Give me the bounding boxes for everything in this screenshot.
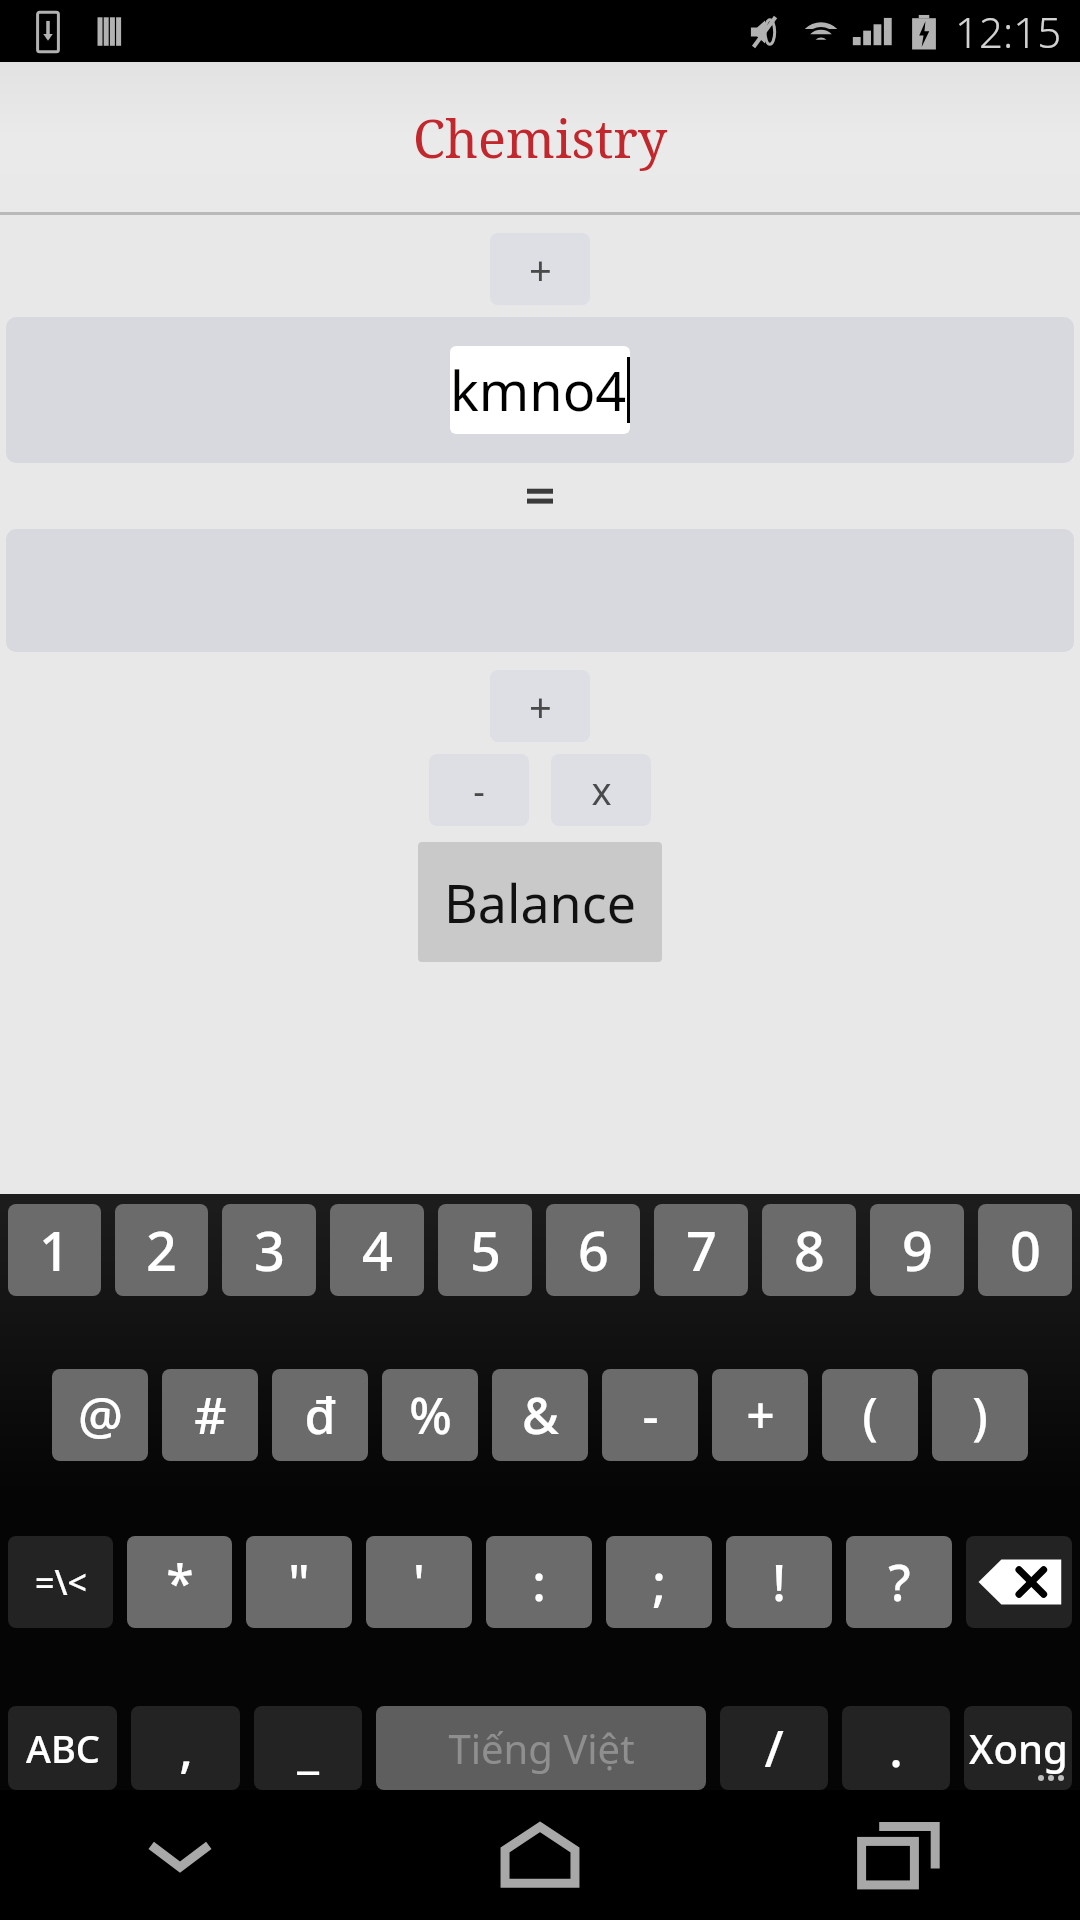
staticText: 12:15 (955, 3, 1062, 60)
button[interactable]: : (486, 1536, 592, 1628)
staticText: Chemistry (413, 102, 668, 173)
button[interactable]: 6 (546, 1204, 640, 1296)
button[interactable]: # (162, 1369, 258, 1461)
button[interactable]: " (246, 1536, 352, 1628)
staticText: 2 (146, 1213, 177, 1287)
staticText: kmno4 (450, 353, 627, 427)
staticText: @ (78, 1381, 123, 1449)
staticText: * (166, 1548, 194, 1616)
button[interactable]: _ (254, 1706, 362, 1790)
button[interactable]: 5 (438, 1204, 532, 1296)
button[interactable]: Recent apps (720, 1790, 1080, 1920)
button[interactable]: Hide keyboard (0, 1790, 360, 1920)
staticText: ! (772, 1548, 786, 1616)
button[interactable]: kmno4 (450, 346, 630, 434)
staticText: / (764, 1714, 784, 1782)
staticText: 8 (794, 1213, 825, 1287)
staticText: ) (972, 1381, 988, 1449)
button[interactable]: * (127, 1536, 232, 1628)
button[interactable]: Xong (964, 1706, 1072, 1790)
button[interactable]: Balance (418, 842, 662, 962)
staticText: 4 (362, 1213, 393, 1287)
staticText: - (473, 766, 485, 815)
button[interactable]: , (131, 1706, 240, 1790)
staticText: ? (888, 1548, 911, 1616)
button[interactable]: 2 (115, 1204, 208, 1296)
button[interactable]: 9 (870, 1204, 964, 1296)
button[interactable]: Backspace (966, 1536, 1072, 1628)
staticText: đ (304, 1381, 336, 1449)
button[interactable]: % (382, 1369, 478, 1461)
button[interactable]: 4 (330, 1204, 424, 1296)
button[interactable]: - (602, 1369, 698, 1461)
button[interactable]: ? (846, 1536, 952, 1628)
staticText: % (409, 1381, 452, 1449)
button[interactable]: ) (932, 1369, 1028, 1461)
staticText: 7 (686, 1213, 717, 1287)
staticText: 1 (39, 1213, 70, 1287)
staticText: 6 (578, 1213, 609, 1287)
button[interactable]: Clear (551, 754, 651, 826)
staticText: + (746, 1381, 775, 1449)
staticText: ' (413, 1548, 425, 1616)
staticText: 0 (1010, 1213, 1041, 1287)
staticText: ABC (26, 1722, 100, 1774)
staticText: Xong (969, 1721, 1068, 1775)
staticText: x (591, 764, 612, 816)
staticText: , (179, 1714, 193, 1782)
button[interactable]: / (720, 1706, 828, 1790)
button[interactable]: ; (606, 1536, 712, 1628)
staticText: 5 (470, 1213, 501, 1287)
staticText: # (194, 1381, 227, 1449)
staticText: Tiếng Việt (448, 1721, 635, 1775)
button[interactable]: =\< (8, 1536, 113, 1628)
staticText: 9 (902, 1213, 933, 1287)
button[interactable]: & (492, 1369, 588, 1461)
button[interactable]: Remove (429, 754, 529, 826)
staticText: . (889, 1714, 903, 1782)
button[interactable]: 8 (762, 1204, 856, 1296)
button[interactable]: 3 (222, 1204, 316, 1296)
button[interactable]: Add reactant (490, 233, 590, 305)
staticText: 3 (254, 1213, 285, 1287)
staticText: _ (297, 1714, 319, 1782)
staticText: & (522, 1381, 559, 1449)
button[interactable]: ABC (8, 1706, 117, 1790)
button[interactable]: + (712, 1369, 808, 1461)
button[interactable]: ! (726, 1536, 832, 1628)
staticText: + (529, 242, 552, 296)
staticText: =\< (35, 1559, 87, 1605)
staticText: " (288, 1548, 310, 1616)
button[interactable]: 1 (8, 1204, 101, 1296)
staticText: ( (862, 1381, 878, 1449)
button[interactable]: @ (52, 1369, 148, 1461)
button[interactable]: đ (272, 1369, 368, 1461)
staticText: Balance (444, 867, 636, 938)
staticText: : (532, 1548, 546, 1616)
button[interactable]: ' (366, 1536, 472, 1628)
button[interactable]: . (842, 1706, 950, 1790)
button[interactable]: Tiếng Việt (376, 1706, 706, 1790)
button[interactable]: Home (360, 1790, 720, 1920)
staticText: - (642, 1381, 659, 1449)
staticText: + (529, 679, 552, 733)
button[interactable]: ( (822, 1369, 918, 1461)
button[interactable]: 0 (978, 1204, 1072, 1296)
button[interactable]: 7 (654, 1204, 748, 1296)
staticText: ; (652, 1548, 666, 1616)
button[interactable]: Add product (490, 670, 590, 742)
